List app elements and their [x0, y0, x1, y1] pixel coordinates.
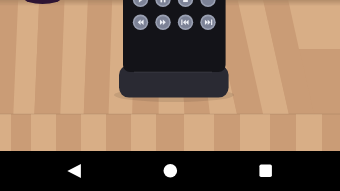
- button[interactable]: Recent apps: [240, 151, 292, 191]
- button[interactable]: Home: [144, 151, 196, 191]
- button[interactable]: Back: [48, 151, 100, 191]
